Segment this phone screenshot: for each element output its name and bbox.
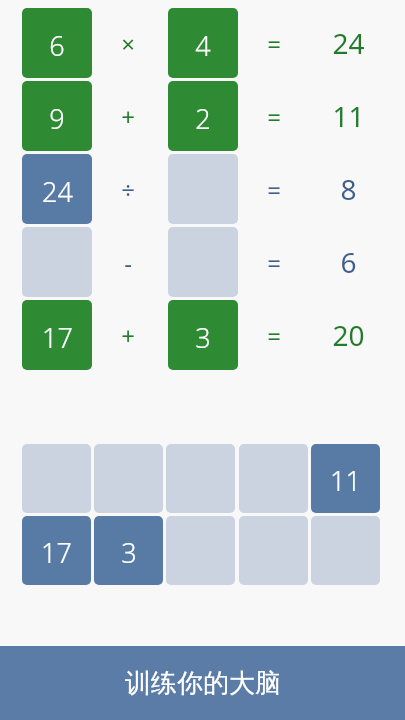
staticText: 训练你的大脑 <box>125 667 281 700</box>
staticText: = <box>267 27 281 60</box>
staticText: 11 <box>330 462 361 499</box>
staticText: = <box>267 173 281 206</box>
button[interactable]: 6 <box>22 8 92 78</box>
staticText: 24 <box>42 173 73 210</box>
staticText: 3 <box>121 534 137 571</box>
staticText: × <box>121 27 135 60</box>
button[interactable]: 2 <box>168 81 238 151</box>
staticText: 24 <box>332 24 365 62</box>
staticText: 8 <box>340 170 357 208</box>
staticText: + <box>121 100 135 133</box>
staticText: = <box>267 246 281 279</box>
staticText: 9 <box>49 100 65 137</box>
button[interactable]: 3 <box>94 516 163 585</box>
staticText: 4 <box>195 27 211 64</box>
staticText: 17 <box>41 534 72 571</box>
staticText: 20 <box>332 316 365 354</box>
button[interactable]: 训练你的大脑 <box>0 646 405 720</box>
button[interactable]: 17 <box>22 300 92 370</box>
staticText: 2 <box>195 100 211 137</box>
staticText: ÷ <box>121 173 135 206</box>
button[interactable]: 9 <box>22 81 92 151</box>
staticText: 6 <box>340 243 357 281</box>
staticText: = <box>267 319 281 352</box>
button[interactable]: 17 <box>22 516 91 585</box>
staticText: = <box>267 100 281 133</box>
button[interactable]: 4 <box>168 8 238 78</box>
button[interactable]: 3 <box>168 300 238 370</box>
staticText: - <box>124 246 132 279</box>
button[interactable]: 11 <box>311 444 380 513</box>
staticText: 11 <box>332 97 365 135</box>
button[interactable]: 24 <box>22 154 92 224</box>
staticText: 6 <box>49 27 65 64</box>
staticText: 3 <box>195 319 211 356</box>
staticText: 17 <box>42 319 73 356</box>
staticText: + <box>121 319 135 352</box>
